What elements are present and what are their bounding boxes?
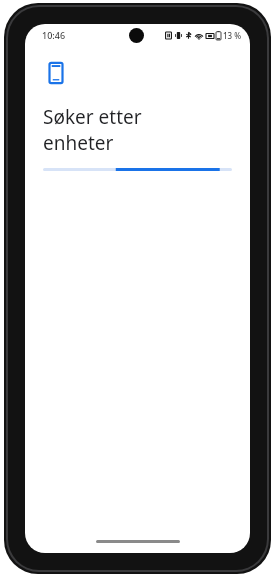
staticText: 10:46 bbox=[42, 29, 66, 41]
other: Device bbox=[43, 60, 69, 86]
staticText: 13 % bbox=[223, 30, 242, 41]
staticText: Søker etter enheter bbox=[43, 104, 142, 155]
